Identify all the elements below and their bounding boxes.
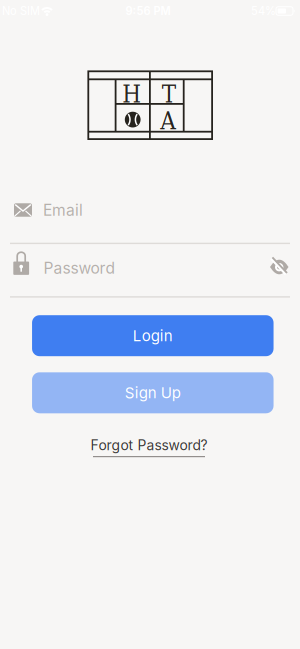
button[interactable]: Forgot Password? (90, 437, 207, 457)
staticText: A (160, 107, 176, 135)
button[interactable]: Sign Up (32, 372, 274, 413)
staticText: Login (133, 327, 173, 345)
button[interactable]: Email (0, 186, 300, 234)
staticText: T (162, 80, 176, 108)
button[interactable] (261, 248, 297, 284)
staticText: Forgot Password? (90, 437, 207, 454)
staticText: Email (43, 201, 83, 219)
staticText: Password (43, 259, 115, 277)
staticText: 9:56 PM (125, 4, 170, 18)
staticText: H (122, 80, 141, 108)
staticText: Sign Up (125, 384, 181, 402)
button[interactable]: Password (0, 243, 300, 291)
button[interactable]: Login (32, 315, 274, 356)
staticText: No SIM (2, 4, 40, 18)
